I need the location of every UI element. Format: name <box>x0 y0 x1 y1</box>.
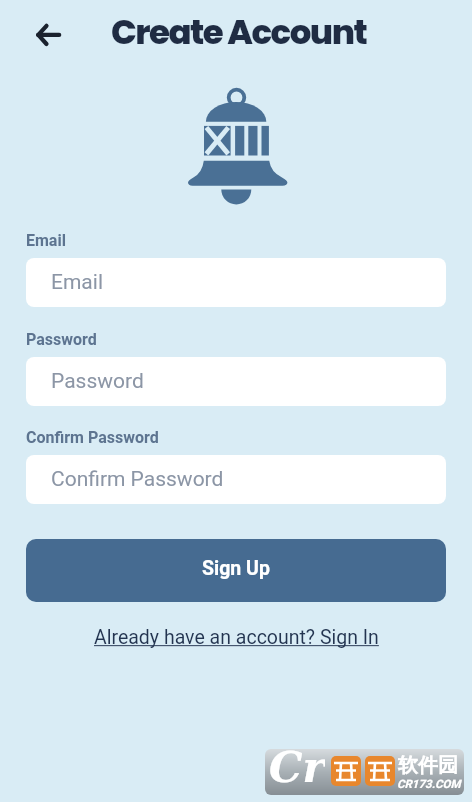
staticText: 软件园 <box>398 753 458 778</box>
button[interactable]: Sign Up <box>26 539 446 602</box>
staticText: Confirm Password <box>51 467 224 492</box>
staticText: CR173.COM <box>397 777 461 790</box>
staticText: Create Account <box>111 8 367 56</box>
staticText: Email <box>51 270 103 295</box>
staticText: Password <box>26 330 97 349</box>
staticText: Email <box>26 231 66 250</box>
button[interactable]: Email <box>26 258 446 307</box>
staticText: Sign Up <box>202 557 270 580</box>
staticText: Confirm Password <box>26 428 159 447</box>
button[interactable]: Confirm Password <box>26 455 446 504</box>
button[interactable] <box>30 16 70 54</box>
staticText: Password <box>51 369 144 394</box>
staticText: Cr <box>269 749 325 789</box>
staticText: Already have an account? Sign In <box>94 626 379 649</box>
button[interactable]: Already have an account? Sign In <box>94 626 379 649</box>
button[interactable]: Password <box>26 357 446 406</box>
